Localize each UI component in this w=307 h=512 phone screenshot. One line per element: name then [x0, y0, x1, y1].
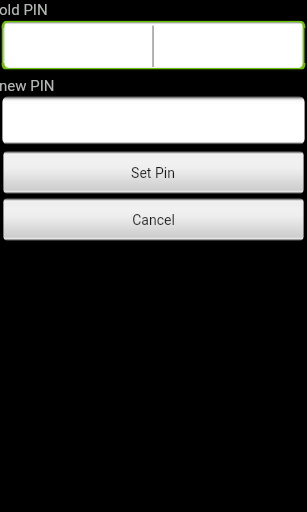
button[interactable]: Cancel	[3, 198, 303, 241]
button[interactable]	[2, 96, 304, 145]
button[interactable]: Set Pin	[3, 151, 303, 194]
staticText: Cancel	[132, 212, 175, 228]
staticText: old PIN	[0, 1, 48, 19]
button[interactable]	[2, 20, 306, 71]
staticText: Set Pin	[131, 165, 175, 181]
staticText: new PIN	[0, 77, 55, 95]
